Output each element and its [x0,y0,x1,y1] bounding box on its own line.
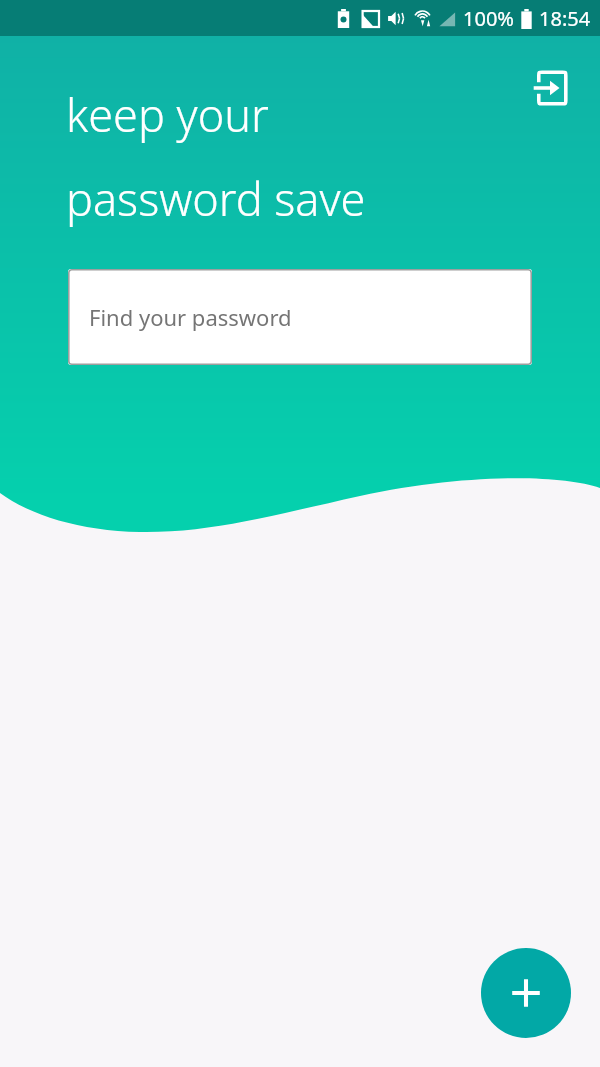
staticText: 100% [463,5,514,32]
staticText: 18:54 [539,5,591,32]
staticText: password save [66,168,366,229]
button[interactable]: Log out [528,66,572,110]
button[interactable]: Find your password [68,269,532,365]
button[interactable]: Add password [481,948,571,1038]
staticText: Find your password [89,302,292,332]
staticText: keep your [66,84,269,145]
